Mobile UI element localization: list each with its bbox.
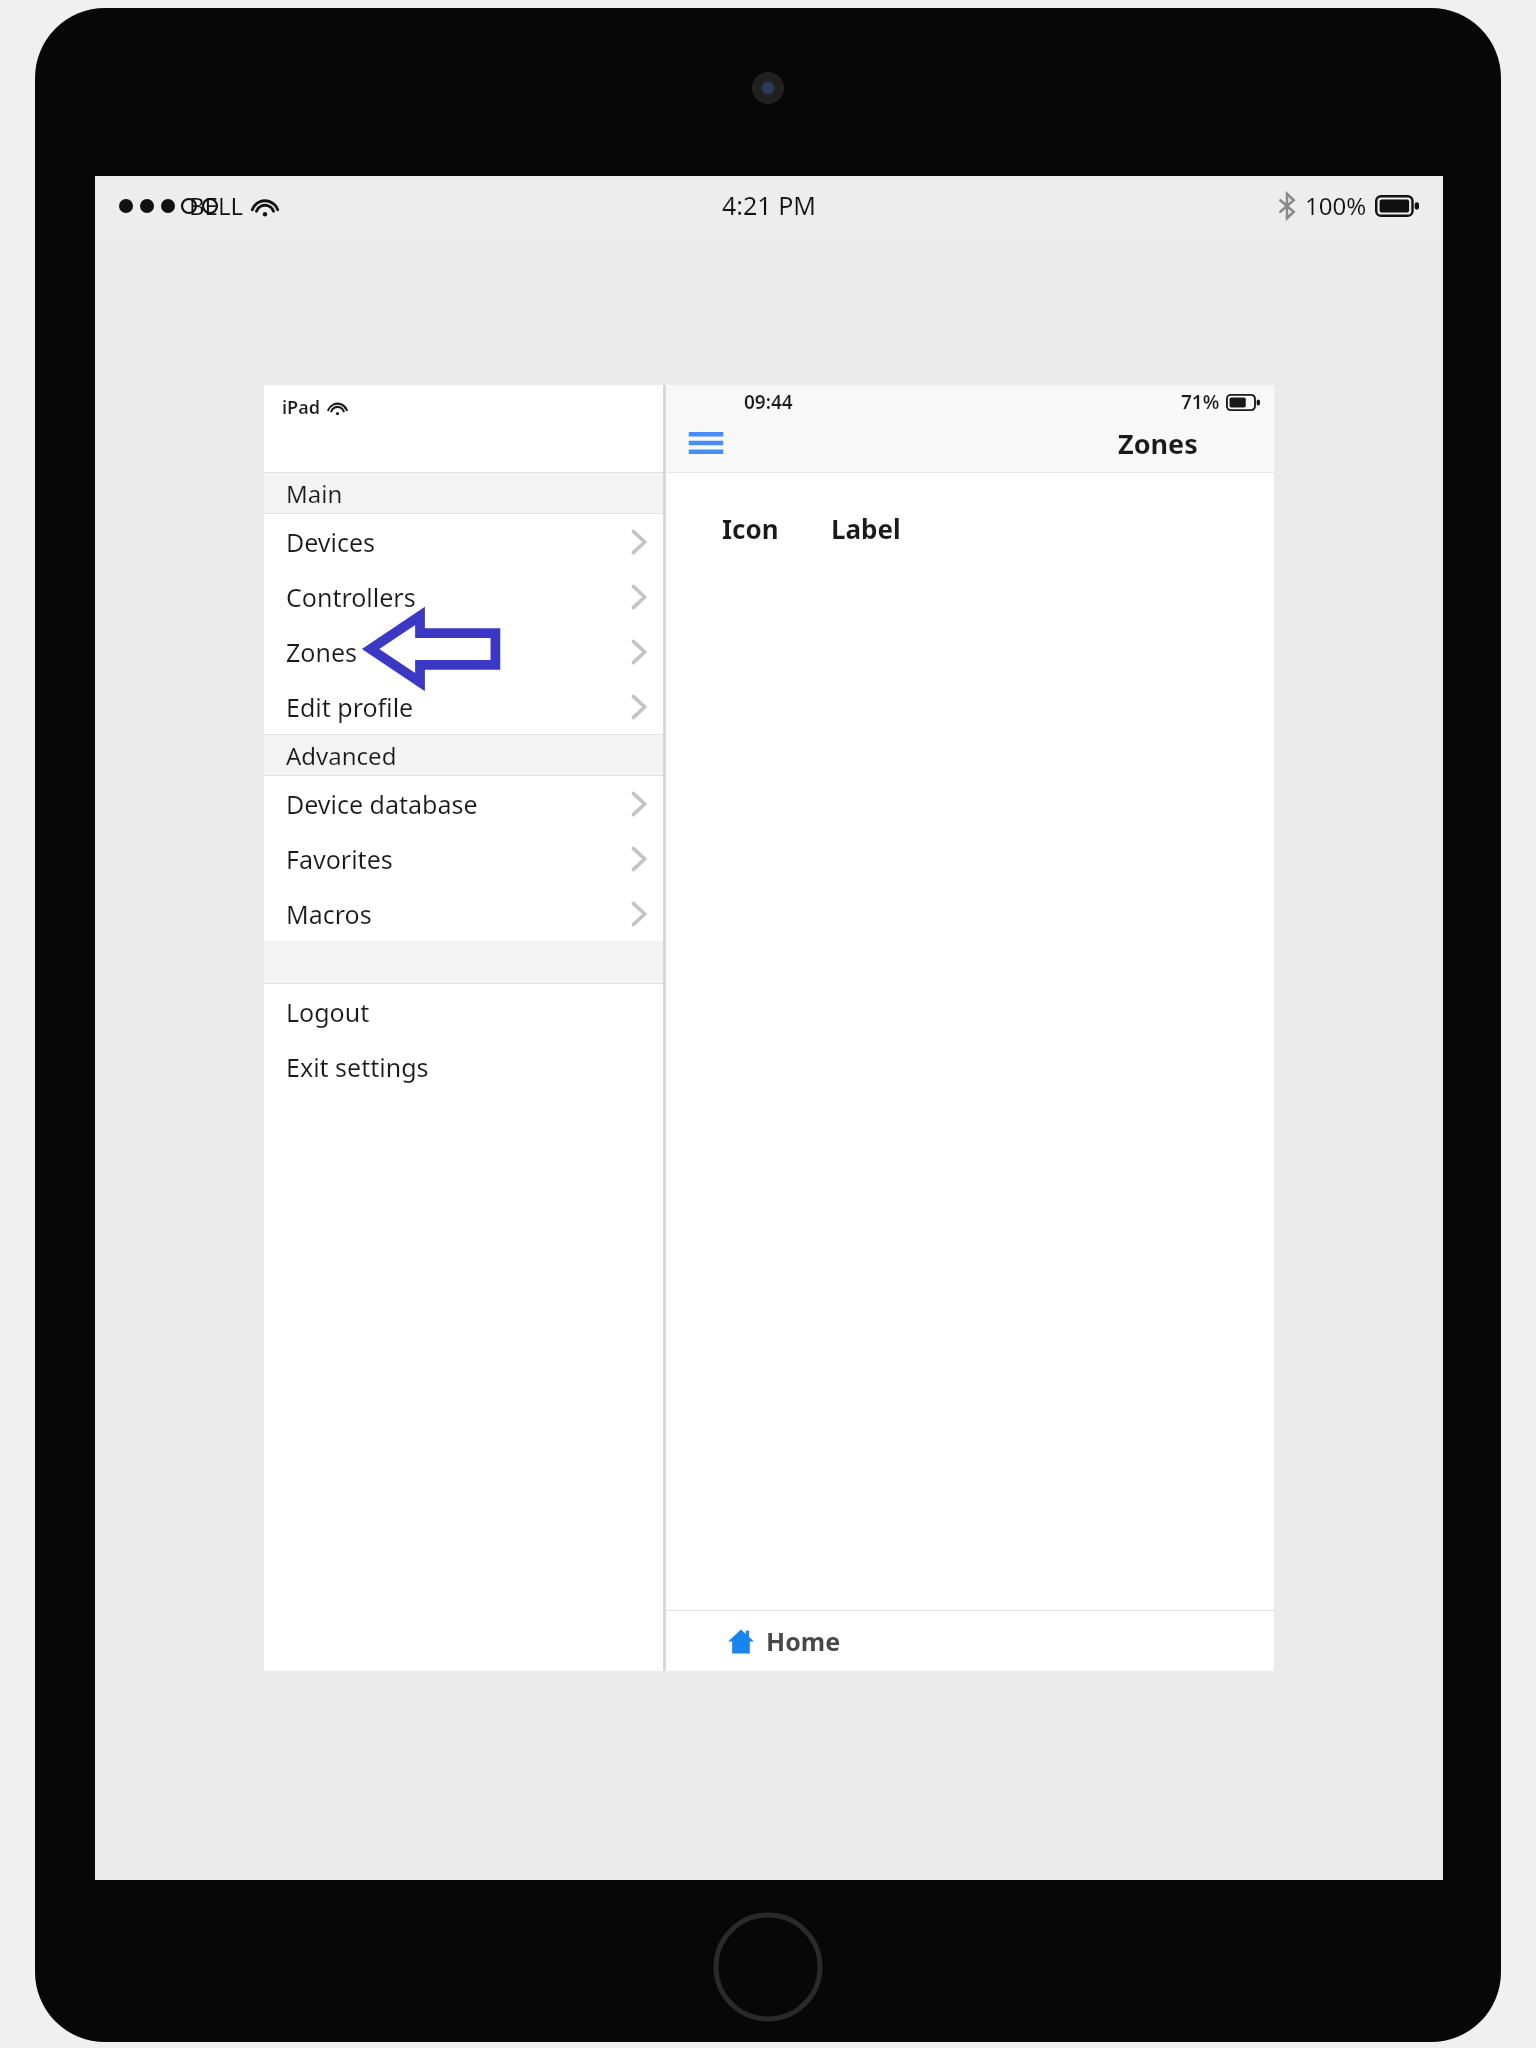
staticText: 09:44 <box>744 389 793 415</box>
staticText: Icon <box>722 511 779 546</box>
button[interactable]: Favorites <box>264 831 663 886</box>
button[interactable]: Logout <box>264 984 663 1039</box>
staticText: Favorites <box>286 842 393 876</box>
button[interactable]: Edit profile <box>264 679 663 734</box>
staticText: Edit profile <box>286 690 414 724</box>
staticText: BELL <box>189 189 244 222</box>
staticText: Macros <box>286 897 372 931</box>
button[interactable]: Zones <box>264 624 663 679</box>
staticText: Device database <box>286 787 478 821</box>
staticText: Logout <box>286 995 370 1029</box>
button[interactable]: Home <box>728 1624 841 1658</box>
button[interactable]: Device database <box>264 776 663 831</box>
button[interactable]: Devices <box>264 514 663 569</box>
staticText: 71% <box>1181 389 1220 415</box>
staticText: Controllers <box>286 580 416 614</box>
staticText: Home <box>766 1624 841 1658</box>
button[interactable]: Exit settings <box>264 1039 663 1094</box>
other: Annotation arrow pointing to Zones <box>368 613 498 685</box>
staticText: Advanced <box>286 739 397 772</box>
button[interactable]: Open menu <box>682 419 730 467</box>
staticText: Zones <box>286 635 357 669</box>
staticText: Main <box>286 477 343 510</box>
staticText: 4:21 PM <box>722 188 816 222</box>
staticText: Devices <box>286 525 376 559</box>
button[interactable]: Macros <box>264 886 663 941</box>
staticText: Exit settings <box>286 1050 429 1084</box>
button[interactable]: Controllers <box>264 569 663 624</box>
staticText: iPad <box>282 395 320 420</box>
staticText: 100% <box>1305 189 1367 222</box>
staticText: Label <box>831 511 901 546</box>
staticText: Zones <box>1118 425 1198 462</box>
